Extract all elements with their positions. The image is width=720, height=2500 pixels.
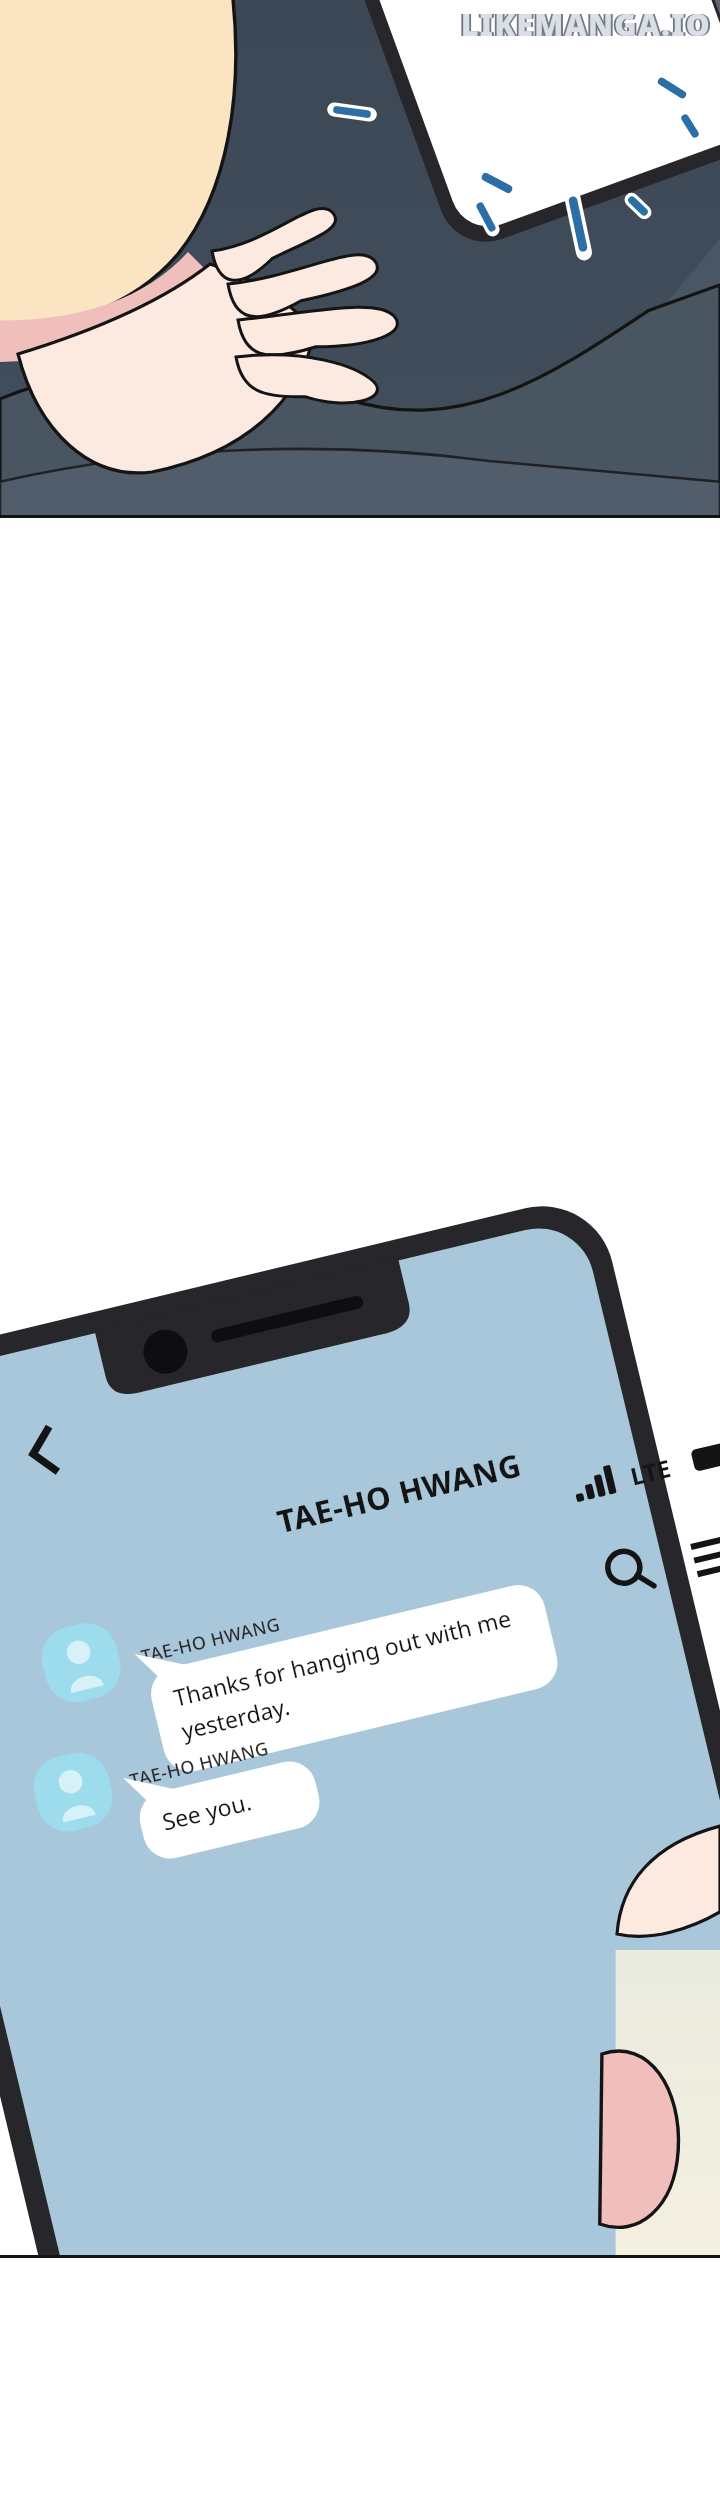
button[interactable]: Comic page: [0, 0, 720, 2500]
